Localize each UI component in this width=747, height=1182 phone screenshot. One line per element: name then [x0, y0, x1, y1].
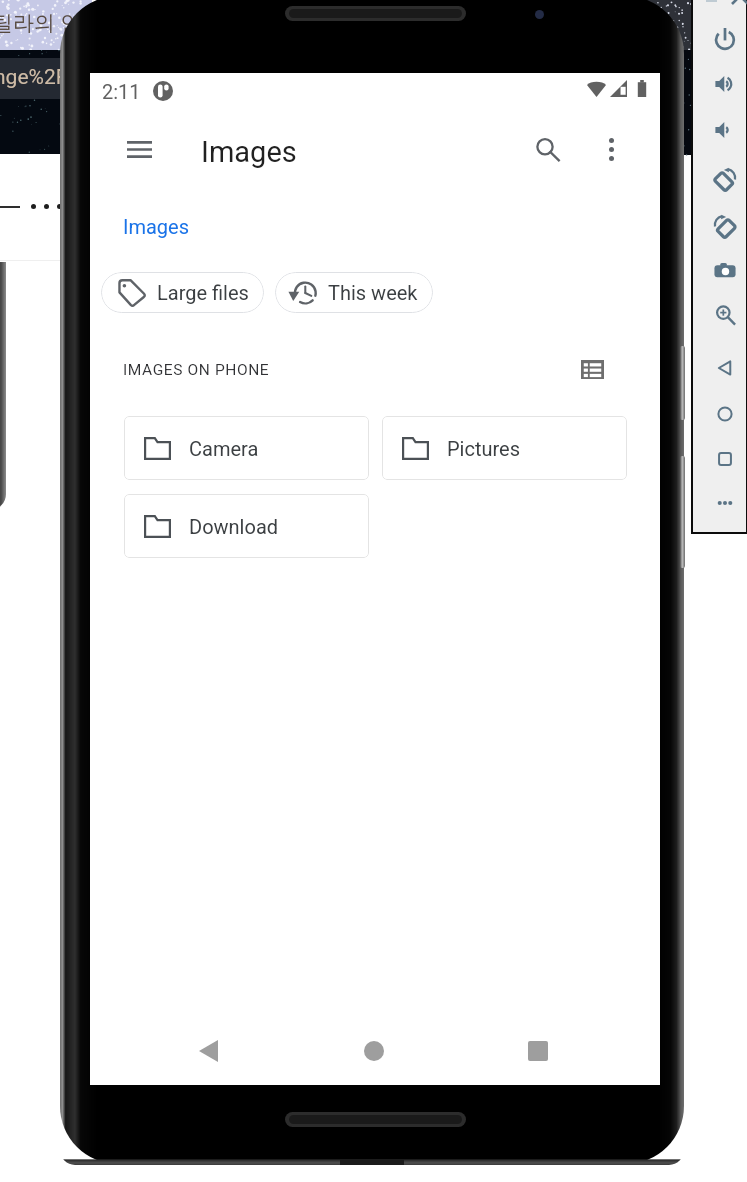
- button[interactable]: Camera: [124, 416, 369, 480]
- button[interactable]: Download: [124, 494, 369, 558]
- button[interactable]: Volume up: [711, 70, 739, 98]
- button[interactable]: Switch to list view: [573, 350, 611, 388]
- button[interactable]: Large files: [101, 272, 264, 313]
- button[interactable]: Home: [711, 400, 739, 428]
- button[interactable]: Navigation menu: [115, 125, 164, 174]
- button[interactable]: Rotate left: [711, 166, 739, 194]
- staticText: Camera: [189, 437, 259, 460]
- button[interactable]: Overview: [711, 445, 739, 473]
- button[interactable]: Zoom: [711, 301, 739, 329]
- button[interactable]: Images: [201, 135, 297, 169]
- button[interactable]: Recent apps: [510, 1023, 566, 1079]
- staticText: 2:11: [102, 80, 141, 103]
- button[interactable]: Images: [123, 215, 190, 238]
- button[interactable]: Pictures: [382, 416, 627, 480]
- button[interactable]: More options: [587, 125, 636, 174]
- button[interactable]: Volume down: [711, 116, 739, 144]
- staticText: Pictures: [447, 437, 521, 460]
- button[interactable]: Home: [346, 1023, 402, 1079]
- staticText: Large files: [157, 281, 249, 304]
- button[interactable]: Power: [711, 25, 739, 53]
- button[interactable]: Search: [523, 125, 572, 174]
- button[interactable]: More: [711, 489, 739, 517]
- button[interactable]: This week: [275, 272, 433, 313]
- button[interactable]: Take screenshot: [711, 257, 739, 285]
- other: Close: [732, 0, 747, 4]
- staticText: 틸라의 안: [0, 10, 82, 36]
- staticText: Download: [189, 515, 279, 538]
- button[interactable]: Back: [711, 354, 739, 382]
- button[interactable]: Back: [180, 1023, 236, 1079]
- button[interactable]: Rotate right: [711, 213, 739, 241]
- staticText: This week: [328, 281, 418, 304]
- staticText: IMAGES ON PHONE: [123, 361, 270, 379]
- staticText: nge%2F: [0, 65, 68, 90]
